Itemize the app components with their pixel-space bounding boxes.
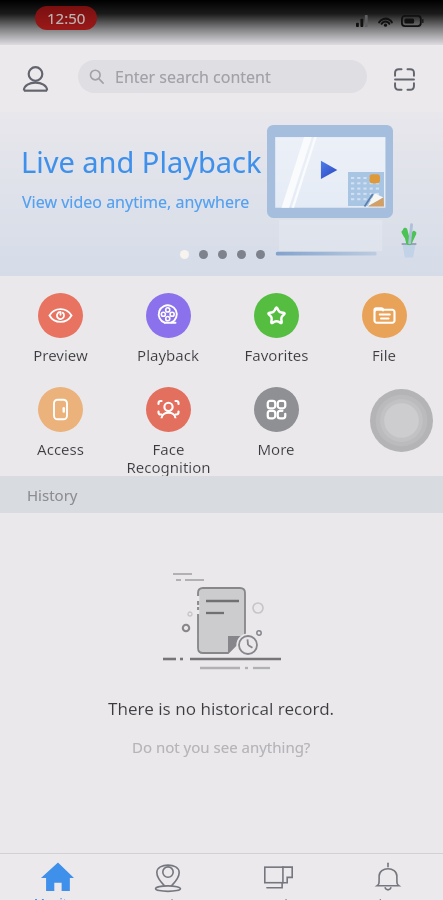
- staticText: Access: [37, 439, 84, 459]
- staticText: Face Recognition: [126, 439, 211, 478]
- button[interactable]: Favorites: [226, 293, 326, 365]
- staticText: Live and Playback: [21, 142, 262, 181]
- button[interactable]: File: [334, 293, 434, 365]
- button[interactable]: Live and Playback: [0, 112, 443, 276]
- button[interactable]: Device: [113, 854, 223, 900]
- staticText: File: [372, 345, 396, 365]
- button[interactable]: Playback: [118, 293, 218, 365]
- staticText: Playback: [137, 345, 199, 365]
- button[interactable]: Monitor: [2, 854, 112, 900]
- staticText: Favorites: [244, 345, 309, 365]
- button[interactable]: Access: [10, 387, 110, 459]
- staticText: Alarm: [371, 896, 405, 900]
- button[interactable]: Face Recognition: [118, 387, 218, 478]
- button[interactable]: Loading: [370, 389, 433, 452]
- staticText: Enter search content: [115, 66, 271, 88]
- staticText: Push: [264, 896, 292, 900]
- staticText: There is no historical record.: [108, 697, 335, 720]
- staticText: Do not you see anything?: [132, 737, 311, 757]
- button[interactable]: More: [226, 387, 326, 459]
- staticText: View video anytime, anywhere: [22, 191, 250, 213]
- button[interactable]: Push: [223, 854, 333, 900]
- staticText: Preview: [33, 345, 88, 365]
- button[interactable]: Alarm: [333, 854, 443, 900]
- button[interactable]: Preview: [10, 293, 110, 365]
- button[interactable]: Enter search content: [78, 60, 367, 93]
- staticText: History: [27, 485, 78, 505]
- button[interactable]: Account: [16, 60, 54, 98]
- staticText: 12:50: [47, 8, 86, 28]
- staticText: Device: [149, 896, 187, 900]
- button[interactable]: Scan: [385, 60, 423, 98]
- staticText: More: [257, 439, 295, 459]
- staticText: Monitor: [34, 895, 80, 900]
